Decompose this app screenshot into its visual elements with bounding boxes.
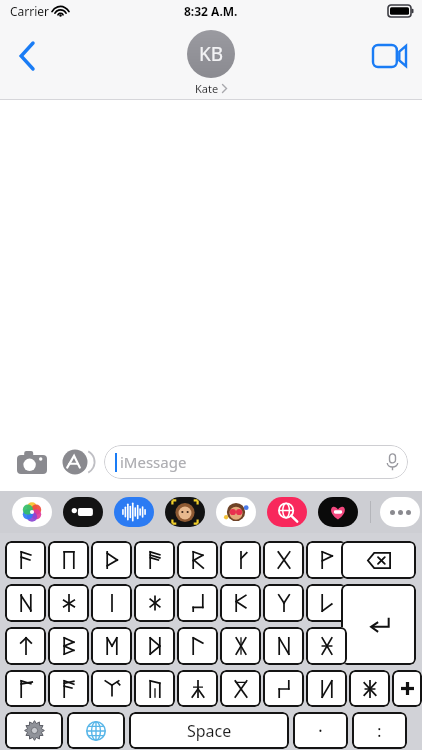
button[interactable] [306,627,347,665]
button[interactable] [263,670,304,707]
button[interactable]: FaceTime video call [368,36,412,76]
button[interactable]: Photos [12,497,52,527]
button[interactable] [134,627,175,665]
button[interactable] [5,584,46,622]
button[interactable] [48,584,89,622]
button[interactable] [263,584,304,622]
staticText: Carrier [10,3,50,19]
button[interactable] [177,584,218,622]
button[interactable] [306,670,347,707]
button[interactable] [91,584,132,622]
staticText: KB [199,41,224,67]
button[interactable]: More apps [380,497,420,527]
button[interactable] [349,670,390,707]
staticText: · [318,718,323,743]
button[interactable] [306,541,347,579]
button[interactable] [177,541,218,579]
button[interactable] [306,584,347,622]
button[interactable]: iMessage [104,445,408,479]
button[interactable] [5,541,46,579]
button[interactable] [220,627,261,665]
button[interactable]: Memoji stickers [216,497,256,527]
staticText: 8:32 A.M. [184,3,238,19]
button[interactable] [263,627,304,665]
button[interactable]: KB [187,30,235,96]
button[interactable] [263,541,304,579]
button[interactable]: · [293,712,348,749]
staticText: Space [187,720,232,742]
button[interactable]: Space [129,712,289,749]
button[interactable]: Digital Touch [318,497,358,527]
button[interactable] [177,627,218,665]
staticText: Kate [195,81,219,96]
button[interactable]: Camera [14,444,50,480]
button[interactable] [48,670,89,707]
button[interactable] [91,670,132,707]
button[interactable]: Backspace [341,541,416,579]
button[interactable]: Back [6,36,50,76]
button[interactable]: Settings [5,712,63,749]
button[interactable]: Apple Cash [63,497,103,527]
button[interactable]: : [352,712,407,749]
button[interactable]: Image search [267,497,307,527]
button[interactable] [48,627,89,665]
button[interactable]: Audio [114,497,154,527]
button[interactable] [48,541,89,579]
button[interactable] [134,584,175,622]
button[interactable] [91,541,132,579]
button[interactable] [220,584,261,622]
staticText: : [377,719,382,742]
button[interactable] [5,670,46,707]
button[interactable]: Return [341,584,416,665]
button[interactable] [134,541,175,579]
staticText: iMessage [120,452,187,472]
button[interactable] [220,670,261,707]
button[interactable]: Memoji [165,497,205,527]
button[interactable]: Plus [392,670,422,707]
button[interactable] [220,541,261,579]
button[interactable] [177,670,218,707]
button[interactable]: Change keyboard [67,712,125,749]
button[interactable] [134,670,175,707]
button[interactable]: Apps [60,445,94,479]
button[interactable] [91,627,132,665]
button[interactable] [5,627,46,665]
